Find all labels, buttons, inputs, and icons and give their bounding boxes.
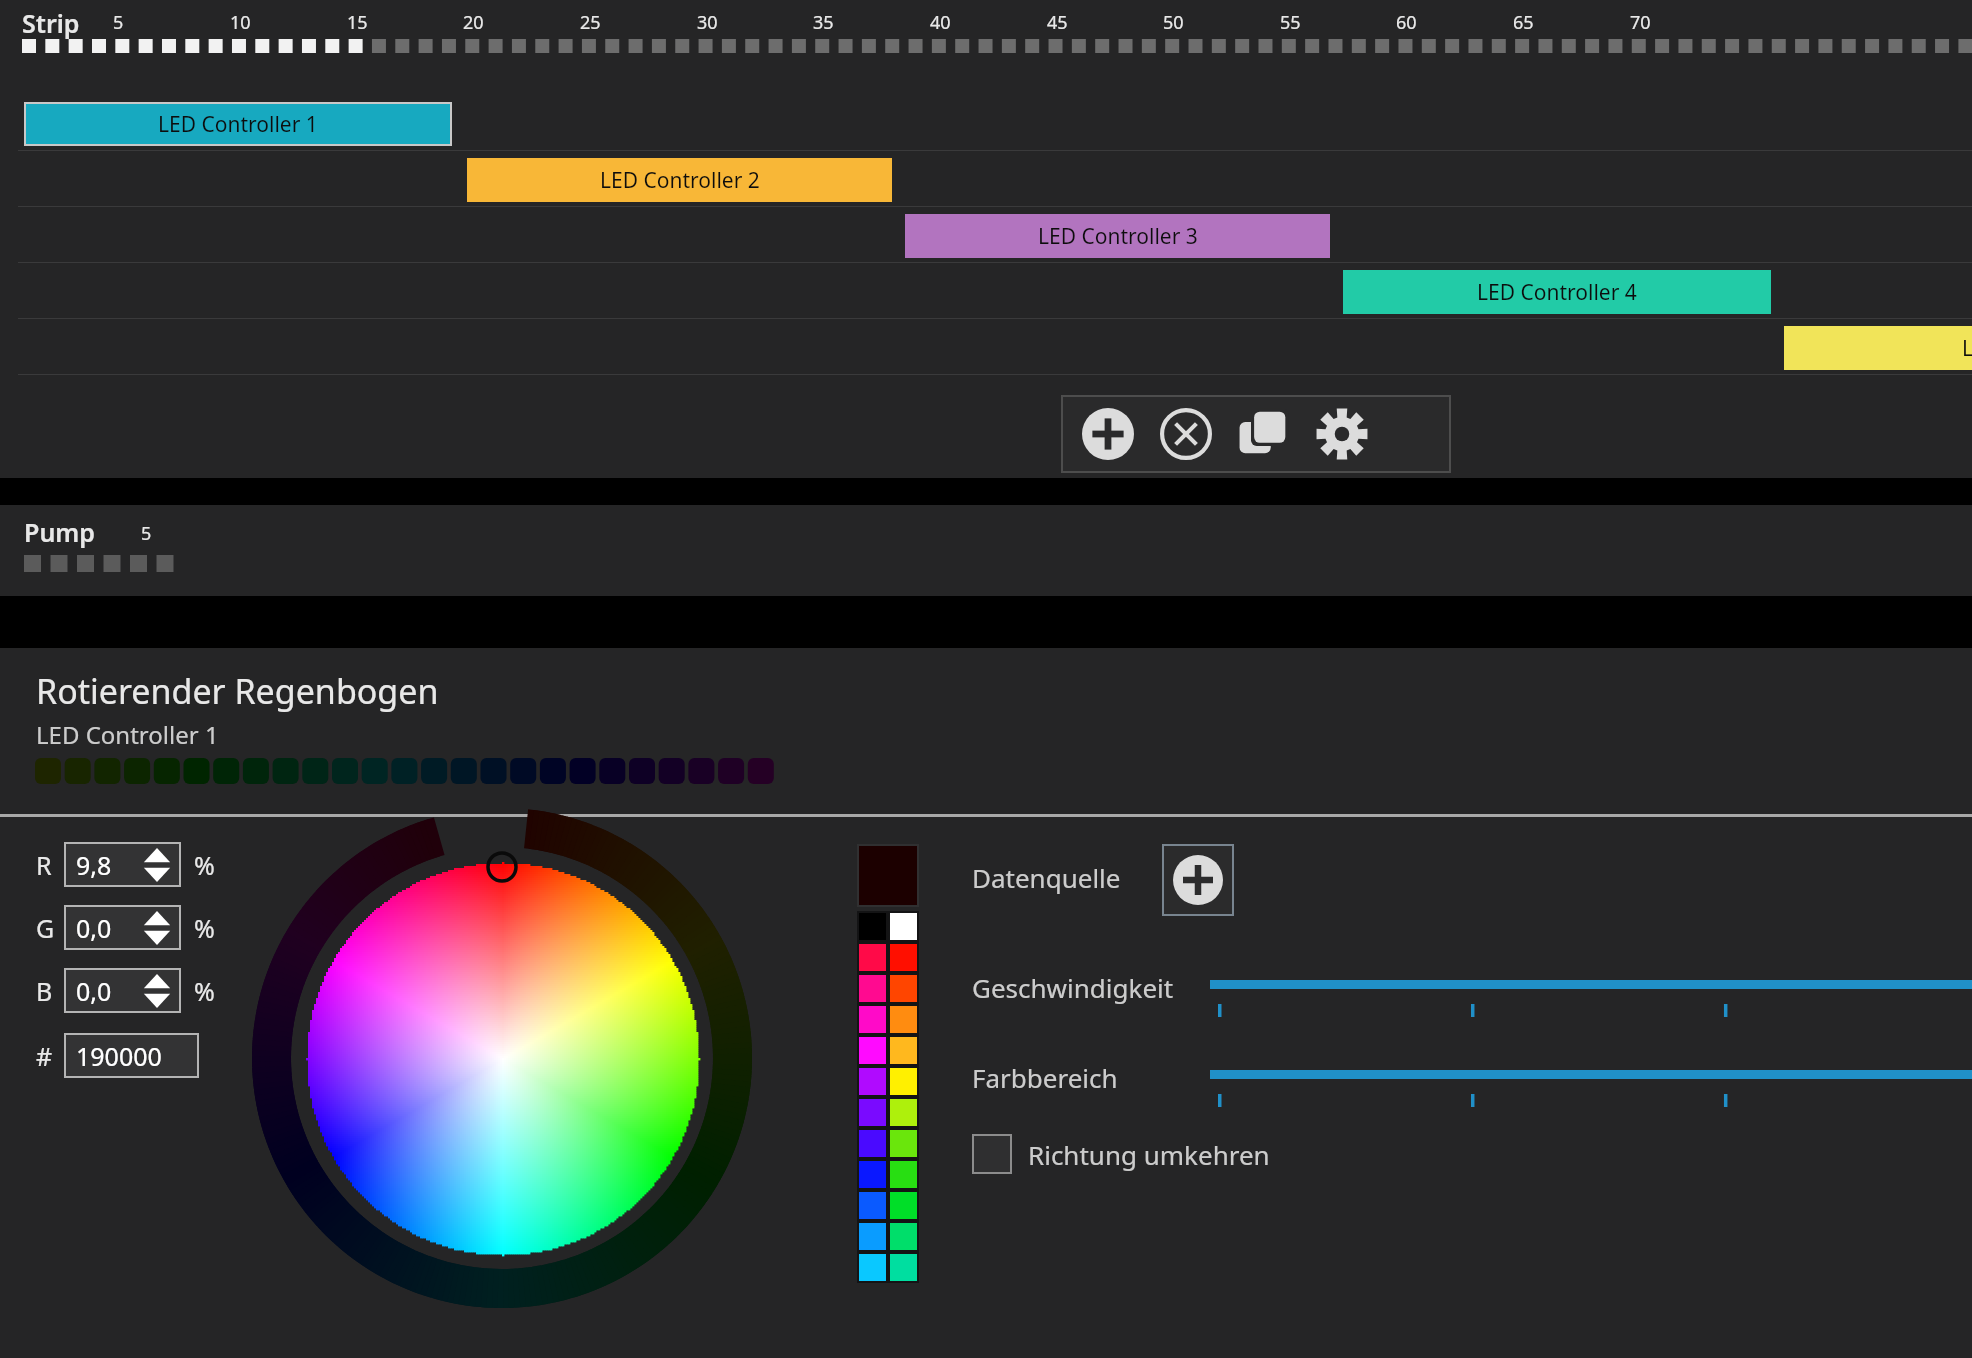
button[interactable]: LED Controller 5 <box>1784 326 1972 370</box>
staticText: 55 <box>1280 10 1301 35</box>
staticText: Farbbereich <box>972 1060 1118 1095</box>
staticText: LED Controller 5 <box>1962 334 1972 363</box>
button[interactable]: Delete <box>1156 404 1216 464</box>
button[interactable]: LED Controller 1 <box>26 104 450 144</box>
staticText: % <box>194 911 215 945</box>
staticText: Rotierender Regenbogen <box>36 668 439 714</box>
button[interactable]: 0,0 <box>66 970 179 1011</box>
button[interactable]: LED Controller 2 <box>467 158 892 202</box>
staticText: % <box>194 974 215 1008</box>
staticText: Datenquelle <box>972 860 1121 895</box>
staticText: 70 <box>1630 10 1651 35</box>
button[interactable]: Add data source <box>1164 846 1232 914</box>
button[interactable]: LED Controller 3 <box>905 214 1330 258</box>
staticText: G <box>36 911 64 945</box>
staticText: 65 <box>1513 10 1534 35</box>
staticText: Richtung umkehren <box>1028 1137 1270 1172</box>
staticText: Geschwindigkeit <box>972 970 1174 1005</box>
staticText: 60 <box>1396 10 1417 35</box>
staticText: 0,0 <box>76 911 112 945</box>
staticText: LED Controller 2 <box>600 166 760 195</box>
button[interactable]: Duplicate <box>1234 404 1294 464</box>
staticText: LED Controller 3 <box>1038 222 1198 251</box>
staticText: # <box>36 1039 64 1073</box>
staticText: B <box>36 974 64 1008</box>
staticText: 25 <box>580 10 601 35</box>
staticText: 5 <box>113 10 124 35</box>
staticText: 20 <box>463 10 484 35</box>
staticText: Pump <box>24 515 95 549</box>
button[interactable]: 190000 <box>66 1035 197 1076</box>
staticText: R <box>36 848 64 882</box>
staticText: 10 <box>230 10 251 35</box>
staticText: 50 <box>1163 10 1184 35</box>
staticText: 9,8 <box>76 848 112 882</box>
staticText: LED Controller 1 <box>158 110 318 139</box>
button[interactable]: LED Controller 4 <box>1343 270 1771 314</box>
staticText: % <box>194 848 215 882</box>
staticText: 35 <box>813 10 834 35</box>
staticText: 45 <box>1047 10 1068 35</box>
staticText: 40 <box>930 10 951 35</box>
button[interactable]: 0,0 <box>66 907 179 948</box>
button[interactable]: Settings <box>1312 404 1372 464</box>
button[interactable]: Color wheel <box>282 828 782 1358</box>
button[interactable]: Slider <box>1210 962 1972 1022</box>
button[interactable]: Add <box>1078 404 1138 464</box>
staticText: 0,0 <box>76 974 112 1008</box>
staticText: 15 <box>347 10 368 35</box>
staticText: LED Controller 1 <box>36 718 219 751</box>
button[interactable]: 9,8 <box>66 844 179 885</box>
button[interactable]: Richtung umkehren <box>972 1134 1270 1174</box>
staticText: 5 <box>141 521 152 546</box>
button[interactable]: Slider <box>1210 1052 1972 1112</box>
staticText: 190000 <box>76 1039 162 1073</box>
staticText: LED Controller 4 <box>1477 278 1637 307</box>
staticText: Strip <box>22 6 80 40</box>
staticText: 30 <box>697 10 718 35</box>
